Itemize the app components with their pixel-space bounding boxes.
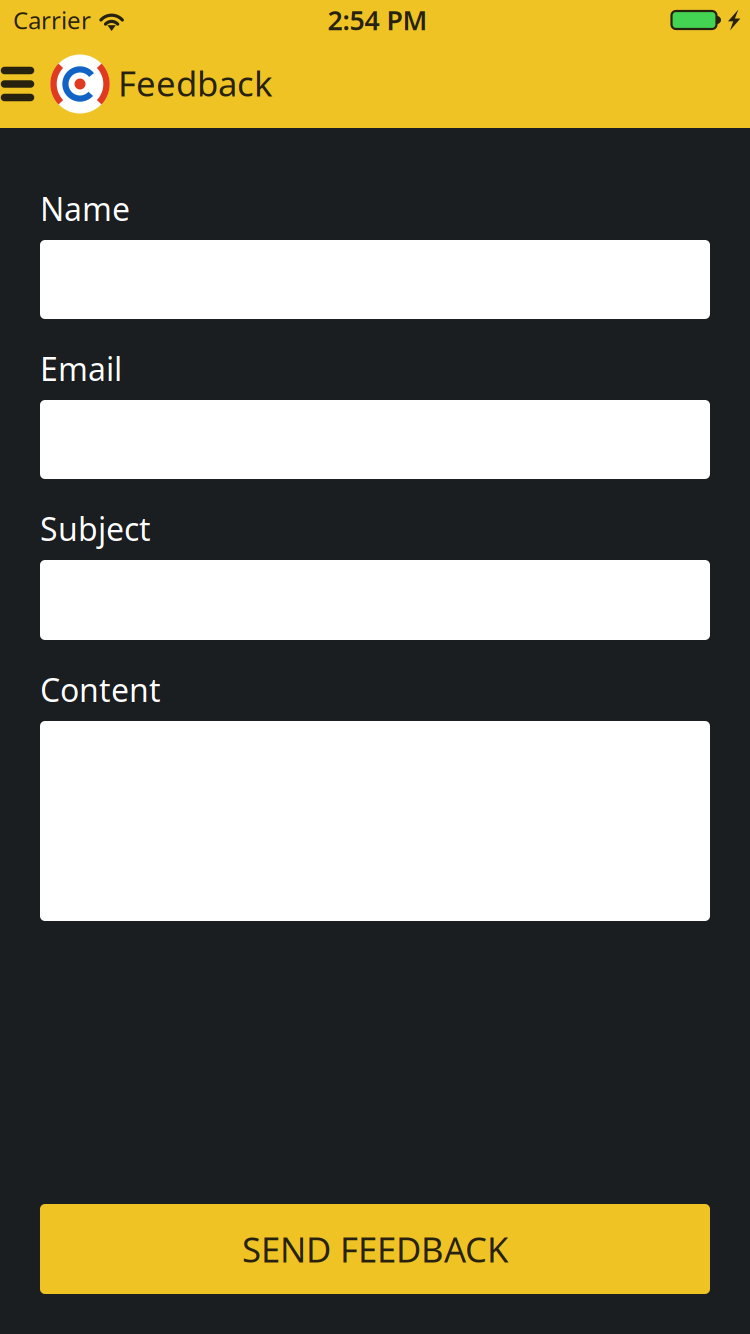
- button[interactable]: SEND FEEDBACK: [40, 1204, 710, 1294]
- staticText: SEND FEEDBACK: [242, 1226, 508, 1272]
- staticText: 2:54 PM: [327, 2, 427, 38]
- staticText: Content: [40, 668, 161, 711]
- button[interactable]: Name: [40, 240, 710, 319]
- button[interactable]: Subject: [40, 560, 710, 640]
- staticText: Subject: [40, 507, 151, 550]
- staticText: Email: [40, 347, 122, 390]
- staticText: Feedback: [118, 60, 273, 106]
- button[interactable]: Menu: [0, 56, 35, 112]
- staticText: Name: [40, 187, 130, 230]
- button[interactable]: Email: [40, 400, 710, 479]
- staticText: Carrier: [13, 4, 91, 36]
